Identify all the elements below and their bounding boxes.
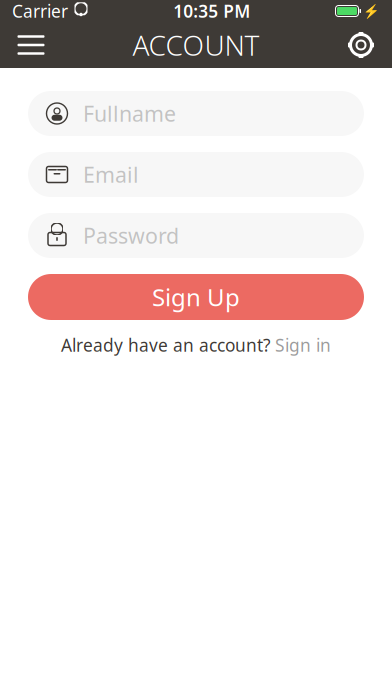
staticText: Carrier [12,0,68,22]
staticText: ⚡ [363,3,380,19]
staticText: Password [83,221,179,250]
staticText: Email [83,160,139,189]
staticText: Sign Up [152,281,240,313]
staticText: Sign in [275,333,331,356]
staticText: 10:35 PM [173,0,250,22]
button[interactable]: Menu [8,22,54,68]
staticText: Fullname [83,99,176,128]
staticText: ACCOUNT [132,26,259,64]
button[interactable]: Settings [338,22,384,68]
button[interactable]: Already have an account? [28,332,364,358]
button[interactable]: Sign Up [28,274,364,320]
staticText: Already have an account? [61,333,271,356]
